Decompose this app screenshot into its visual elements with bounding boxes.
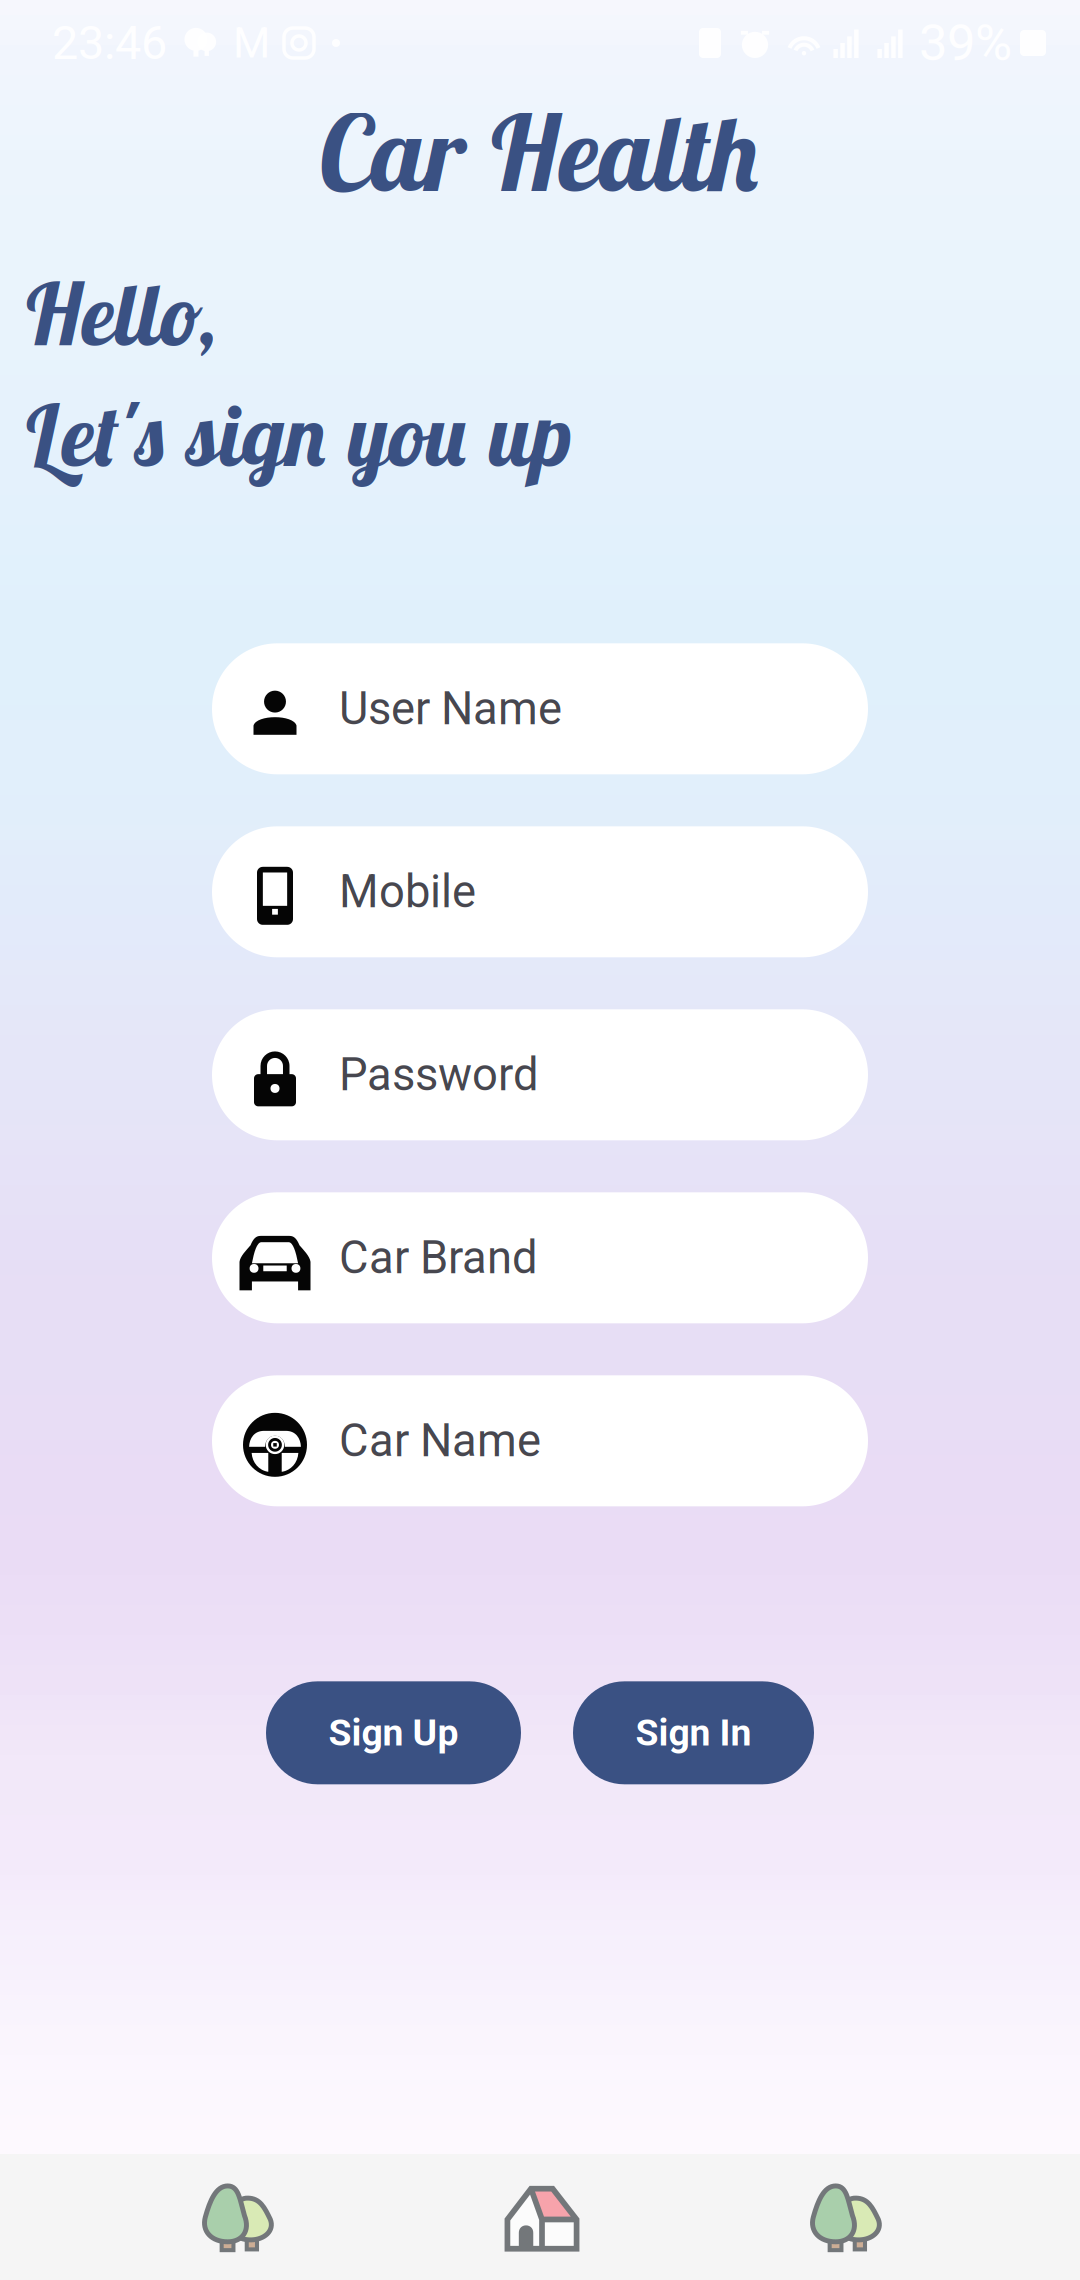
staticText: Sign In bbox=[635, 1711, 751, 1755]
button[interactable]: Sign Up bbox=[266, 1681, 521, 1784]
staticText: Hello, bbox=[22, 260, 221, 367]
staticText: M bbox=[233, 18, 270, 68]
button[interactable]: Home bbox=[390, 2154, 694, 2280]
button[interactable]: Garage bbox=[694, 2154, 998, 2280]
staticText: Sign Up bbox=[328, 1711, 458, 1755]
staticText: 23:46 bbox=[52, 16, 167, 70]
staticText: Mobile bbox=[339, 865, 476, 918]
button[interactable]: Trips bbox=[86, 2154, 390, 2280]
staticText: Password bbox=[339, 1048, 539, 1101]
button[interactable]: User Name bbox=[212, 643, 868, 774]
button[interactable]: Password bbox=[212, 1009, 868, 1140]
staticText: User Name bbox=[339, 682, 562, 735]
button[interactable]: Car Name bbox=[212, 1375, 868, 1506]
button[interactable]: Car Brand bbox=[212, 1192, 868, 1323]
staticText: 39% bbox=[919, 13, 1012, 73]
staticText: Let's sign you up bbox=[22, 381, 571, 487]
staticText: Car Health bbox=[317, 87, 763, 217]
staticText: Car Name bbox=[339, 1414, 541, 1467]
button[interactable]: Mobile bbox=[212, 826, 868, 957]
button[interactable]: Sign In bbox=[573, 1681, 814, 1784]
staticText: Car Brand bbox=[339, 1231, 538, 1284]
